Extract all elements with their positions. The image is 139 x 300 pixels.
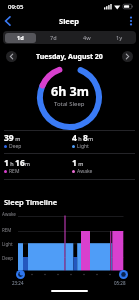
staticText: 1d [17,34,24,41]
staticText: Sleep [59,16,80,26]
staticText: 7d [50,34,57,41]
button[interactable]: 1d [3,31,37,44]
staticText: REM [2,227,12,233]
staticText: 23:24 [12,280,24,286]
button[interactable] [16,270,25,279]
button[interactable] [2,15,14,27]
staticText: Tuesday, August 20 [36,52,103,62]
button[interactable] [125,15,137,27]
staticText: Awake [77,168,93,175]
button[interactable]: 1y [103,31,136,44]
staticText: Awake [2,211,16,217]
button[interactable] [6,51,17,62]
staticText: Light [2,241,13,247]
staticText: 39 m [4,132,21,144]
staticText: 1 m [72,157,84,169]
staticText: 1 h 16m [4,157,30,169]
button[interactable]: 7d [37,31,70,44]
button[interactable] [122,51,133,62]
staticText: 05:28 [114,280,126,286]
staticText: Total Sleep [54,100,85,108]
staticText: 4w [83,34,91,41]
staticText: Sleep Timeline [4,197,58,207]
button[interactable] [119,270,128,279]
staticText: 1y [116,34,123,41]
staticText: Deep [9,143,22,150]
staticText: 09:05 [8,3,24,11]
staticText: REM [9,168,20,175]
staticText: 4 h 8m [72,132,94,144]
button[interactable]: 4w [70,31,103,44]
staticText: Deep [2,255,14,261]
staticText: Light [77,143,89,150]
staticText: 6h 3m [51,83,89,100]
